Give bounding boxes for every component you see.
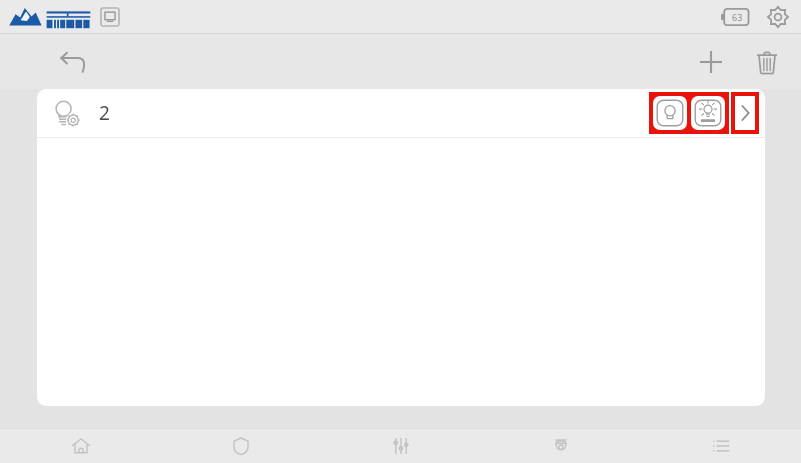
button[interactable]: Delete: [747, 42, 787, 82]
button[interactable]: Display: [100, 7, 120, 27]
button[interactable]: Settings: [765, 4, 791, 30]
button[interactable]: Security: [161, 428, 321, 463]
button[interactable]: Events: [641, 428, 801, 463]
button[interactable]: Dim to 50 percent: [691, 96, 725, 130]
button[interactable]: Turn off: [653, 96, 687, 130]
button[interactable]: 2: [37, 89, 765, 137]
button[interactable]: Add: [691, 42, 731, 82]
staticText: 2: [99, 100, 110, 126]
staticText: 63: [732, 11, 743, 23]
button[interactable]: Automation: [321, 428, 481, 463]
button[interactable]: Back: [52, 42, 92, 82]
button[interactable]: Home: [0, 428, 161, 463]
button[interactable]: Cameras: [481, 428, 641, 463]
button[interactable]: Battery 63 percent: [719, 6, 755, 28]
button[interactable]: Open details: [735, 96, 755, 130]
